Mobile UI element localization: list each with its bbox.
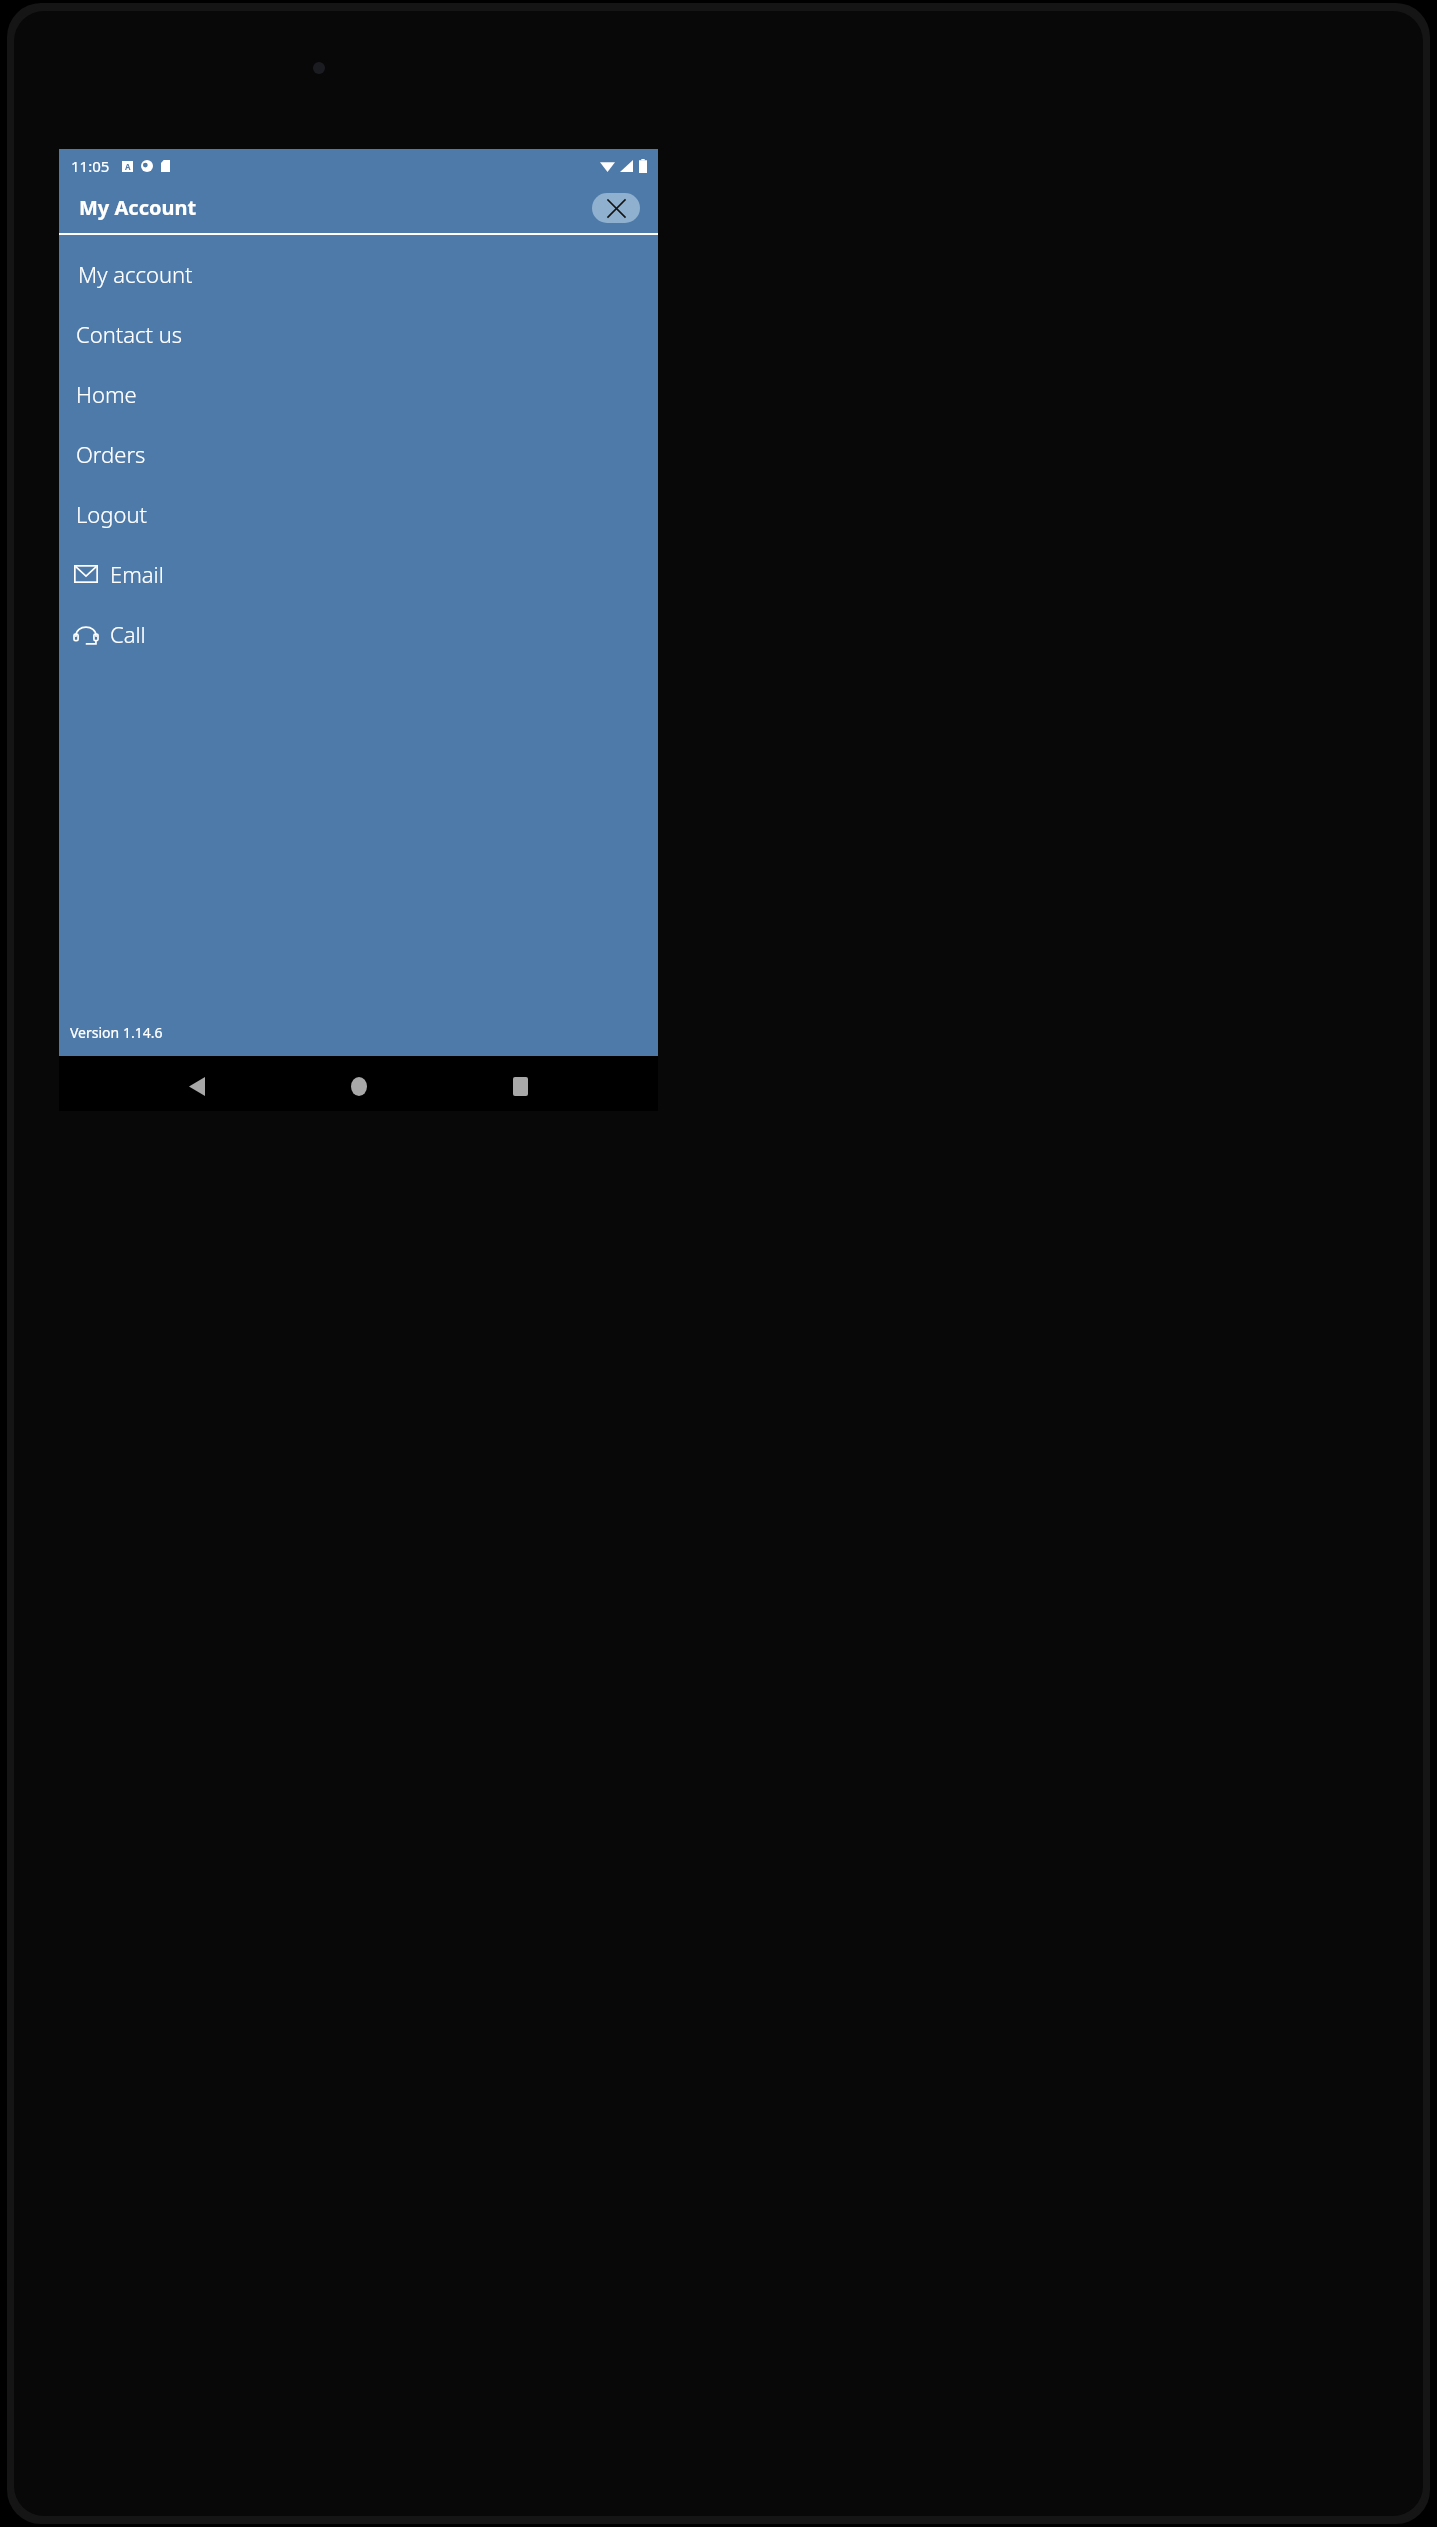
button[interactable]: Home: [335, 1062, 383, 1110]
staticText: My account: [78, 259, 193, 289]
staticText: Email: [110, 559, 164, 589]
staticText: Orders: [76, 439, 146, 469]
button[interactable]: Orders: [59, 424, 658, 484]
button[interactable]: My account: [59, 244, 658, 304]
staticText: My Account: [79, 194, 197, 221]
staticText: Home: [76, 379, 137, 409]
staticText: Call: [110, 619, 146, 649]
button[interactable]: Contact us: [59, 304, 658, 364]
button[interactable]: Logout: [59, 484, 658, 544]
staticText: A: [125, 161, 131, 172]
button[interactable]: Home: [59, 364, 658, 424]
button[interactable]: Email: [59, 544, 658, 604]
staticText: Version 1.14.6: [70, 1023, 163, 1042]
staticText: Logout: [76, 499, 148, 529]
button[interactable]: Call: [59, 604, 658, 664]
button[interactable]: Recent apps: [496, 1062, 544, 1110]
button[interactable]: Back: [173, 1062, 221, 1110]
button[interactable]: Close: [592, 193, 640, 223]
staticText: Contact us: [76, 319, 183, 349]
staticText: 11:05: [71, 156, 110, 176]
